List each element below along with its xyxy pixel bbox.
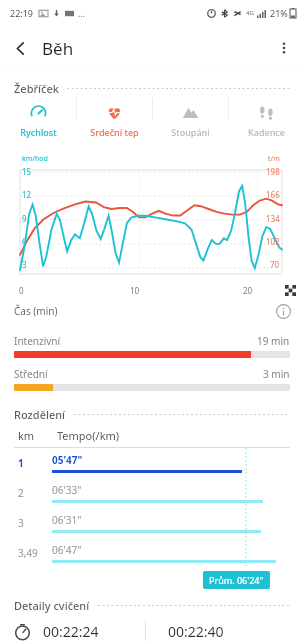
staticText: Rychlost [20, 126, 57, 138]
staticText: Rozdělení [14, 407, 66, 422]
staticText: 21% [270, 7, 288, 19]
staticText: km [18, 428, 35, 443]
staticText: 9 [22, 213, 27, 224]
staticText: km/hod [22, 154, 48, 164]
staticText: Intenzivní [14, 334, 61, 348]
staticText: 3 [18, 516, 24, 530]
staticText: 05'47" [52, 453, 83, 467]
button[interactable]: 2 [0, 478, 304, 508]
staticText: 00:22:40 [168, 622, 224, 641]
staticText: Žebříček [14, 81, 59, 96]
button[interactable]: 3,49 [0, 538, 304, 568]
staticText: 20 [243, 285, 253, 296]
staticText: 70 [270, 259, 280, 270]
staticText: 3 [22, 259, 27, 270]
staticText: Tempo(/km) [57, 428, 120, 443]
button[interactable]: 1 [0, 448, 304, 478]
staticText: 134 [266, 213, 280, 224]
staticText: 0 [19, 285, 24, 296]
button[interactable]: More options [264, 28, 304, 68]
staticText: 198 [266, 166, 280, 177]
staticText: Čas (min) [14, 304, 58, 318]
staticText: 10 [130, 285, 140, 296]
button[interactable]: Kadence [229, 98, 304, 138]
staticText: Srdeční tep [90, 126, 139, 138]
staticText: 19 min [257, 334, 290, 348]
button[interactable]: Back [0, 28, 40, 68]
button[interactable]: Information [272, 300, 294, 322]
staticText: 166 [266, 189, 280, 200]
button[interactable]: Stoupání [153, 98, 228, 138]
staticText: 3,49 [18, 546, 38, 560]
staticText: Stoupání [171, 126, 210, 138]
staticText: 3 min [263, 367, 290, 381]
button[interactable]: 3 [0, 508, 304, 538]
staticText: 12 [22, 189, 32, 200]
staticText: 102 [266, 236, 280, 247]
staticText: 06'33" [52, 483, 82, 497]
staticText: 06'47" [52, 543, 82, 557]
staticText: 2 [18, 486, 24, 500]
staticText: Kadence [248, 126, 285, 138]
button[interactable]: Srdeční tep [77, 98, 152, 138]
staticText: 4G [246, 9, 254, 17]
staticText: … [78, 7, 86, 19]
staticText: t/m [268, 154, 280, 164]
staticText: 22:19 [10, 7, 34, 19]
staticText: 06'31" [52, 513, 82, 527]
staticText: 00:22:24 [43, 622, 99, 641]
staticText: 15 [22, 166, 32, 177]
staticText: Střední [14, 367, 48, 381]
staticText: 6 [22, 236, 27, 247]
staticText: Prům. 06'24" [209, 574, 264, 586]
staticText: 1 [18, 456, 24, 470]
staticText: Běh [42, 37, 74, 60]
staticText: Detaily cvičení [14, 598, 90, 613]
button[interactable]: Rychlost [0, 98, 76, 138]
